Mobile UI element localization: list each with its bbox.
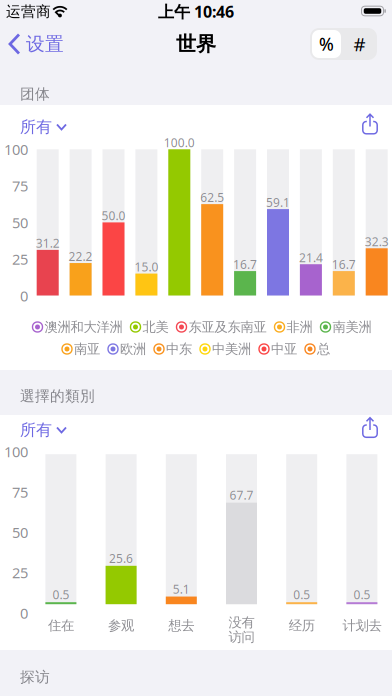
- staticText: 75: [12, 482, 28, 502]
- staticText: #: [353, 32, 365, 56]
- staticText: 运营商: [6, 2, 51, 20]
- staticText: 22.2: [69, 248, 93, 264]
- staticText: 50: [12, 523, 28, 542]
- staticText: 东亚及东南亚: [188, 319, 266, 335]
- staticText: 南美洲: [332, 319, 371, 335]
- staticText: 中亚: [271, 341, 297, 357]
- staticText: 0: [20, 286, 28, 305]
- staticText: 总: [317, 341, 330, 357]
- button[interactable]: %: [312, 30, 341, 58]
- staticText: 想去: [168, 617, 194, 634]
- button[interactable]: #: [344, 30, 374, 58]
- staticText: 没有: [228, 614, 254, 631]
- button[interactable]: Share: [362, 417, 378, 438]
- staticText: 澳洲和大洋洲: [44, 319, 122, 335]
- staticText: 21.4: [299, 249, 323, 265]
- staticText: 15.0: [134, 259, 158, 275]
- staticText: 所有: [20, 420, 52, 440]
- staticText: 5.1: [173, 581, 190, 597]
- staticText: %: [319, 32, 334, 55]
- staticText: 50.0: [101, 208, 125, 224]
- staticText: 中东: [166, 341, 192, 357]
- staticText: 0: [20, 603, 28, 623]
- staticText: 访问: [228, 629, 254, 645]
- staticText: 设置: [26, 32, 64, 55]
- staticText: 32.3: [365, 234, 389, 249]
- staticText: 25: [12, 563, 28, 582]
- staticText: 16.7: [332, 256, 356, 272]
- staticText: 0.5: [52, 587, 69, 603]
- staticText: 中美洲: [212, 341, 251, 357]
- staticText: 欧洲: [120, 341, 146, 357]
- staticText: 100.0: [164, 135, 195, 150]
- staticText: 100: [4, 442, 28, 461]
- staticText: 0.5: [293, 587, 310, 603]
- staticText: 探访: [20, 668, 50, 686]
- button[interactable]: 所有: [20, 115, 100, 139]
- staticText: 25: [12, 249, 28, 269]
- staticText: 31.2: [36, 235, 60, 251]
- staticText: 世界: [176, 32, 216, 56]
- staticText: 上午 10:46: [158, 1, 234, 22]
- staticText: 所有: [20, 117, 52, 137]
- staticText: 100: [4, 140, 28, 159]
- staticText: 25.6: [109, 550, 133, 566]
- staticText: 選擇的類別: [20, 387, 95, 405]
- staticText: 16.7: [233, 256, 257, 272]
- staticText: 经历: [289, 617, 315, 634]
- staticText: 团体: [20, 85, 50, 103]
- staticText: 62.5: [200, 189, 224, 205]
- button[interactable]: 设置: [10, 29, 100, 59]
- staticText: 0.5: [353, 587, 370, 603]
- staticText: 50: [12, 213, 28, 232]
- staticText: 非洲: [286, 319, 312, 335]
- button[interactable]: Share: [362, 113, 378, 134]
- staticText: 59.1: [266, 194, 290, 210]
- staticText: 计划去: [342, 617, 381, 634]
- staticText: 67.7: [229, 487, 253, 503]
- staticText: 住在: [48, 617, 74, 634]
- staticText: 北美: [142, 319, 168, 335]
- staticText: 南亚: [74, 341, 100, 357]
- button[interactable]: 所有: [20, 418, 100, 442]
- staticText: 参观: [108, 617, 134, 634]
- staticText: 75: [12, 176, 28, 196]
